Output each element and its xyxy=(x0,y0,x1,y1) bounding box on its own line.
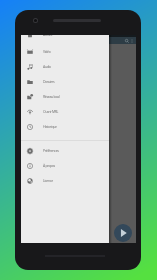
button[interactable]: Licence xyxy=(21,173,109,188)
button[interactable]: More options xyxy=(129,38,134,43)
button[interactable]: Ouvrir MRL xyxy=(21,104,109,119)
button[interactable]: À propos xyxy=(21,158,109,173)
staticText: Dossiers xyxy=(43,79,55,84)
staticText: À propos xyxy=(43,163,55,168)
button[interactable]: Historique xyxy=(21,119,109,134)
button[interactable]: Préférences xyxy=(21,143,109,158)
button[interactable]: Dossiers xyxy=(21,74,109,89)
staticText: Vidéo xyxy=(43,49,51,54)
button[interactable]: Réseau local xyxy=(21,89,109,104)
staticText: Accueil xyxy=(43,35,53,37)
staticText: Préférences xyxy=(43,148,59,153)
staticText: Réseau local xyxy=(43,94,60,99)
button[interactable]: Vidéo xyxy=(21,44,109,59)
staticText: Ouvrir MRL xyxy=(43,109,59,114)
staticText: Historique xyxy=(43,124,57,129)
staticText: Licence xyxy=(43,178,53,183)
button[interactable]: Accueil xyxy=(21,35,109,42)
button[interactable]: Audio xyxy=(21,59,109,74)
button[interactable]: Play xyxy=(114,224,132,242)
button[interactable]: Search xyxy=(124,38,129,43)
staticText: Audio xyxy=(43,64,51,69)
